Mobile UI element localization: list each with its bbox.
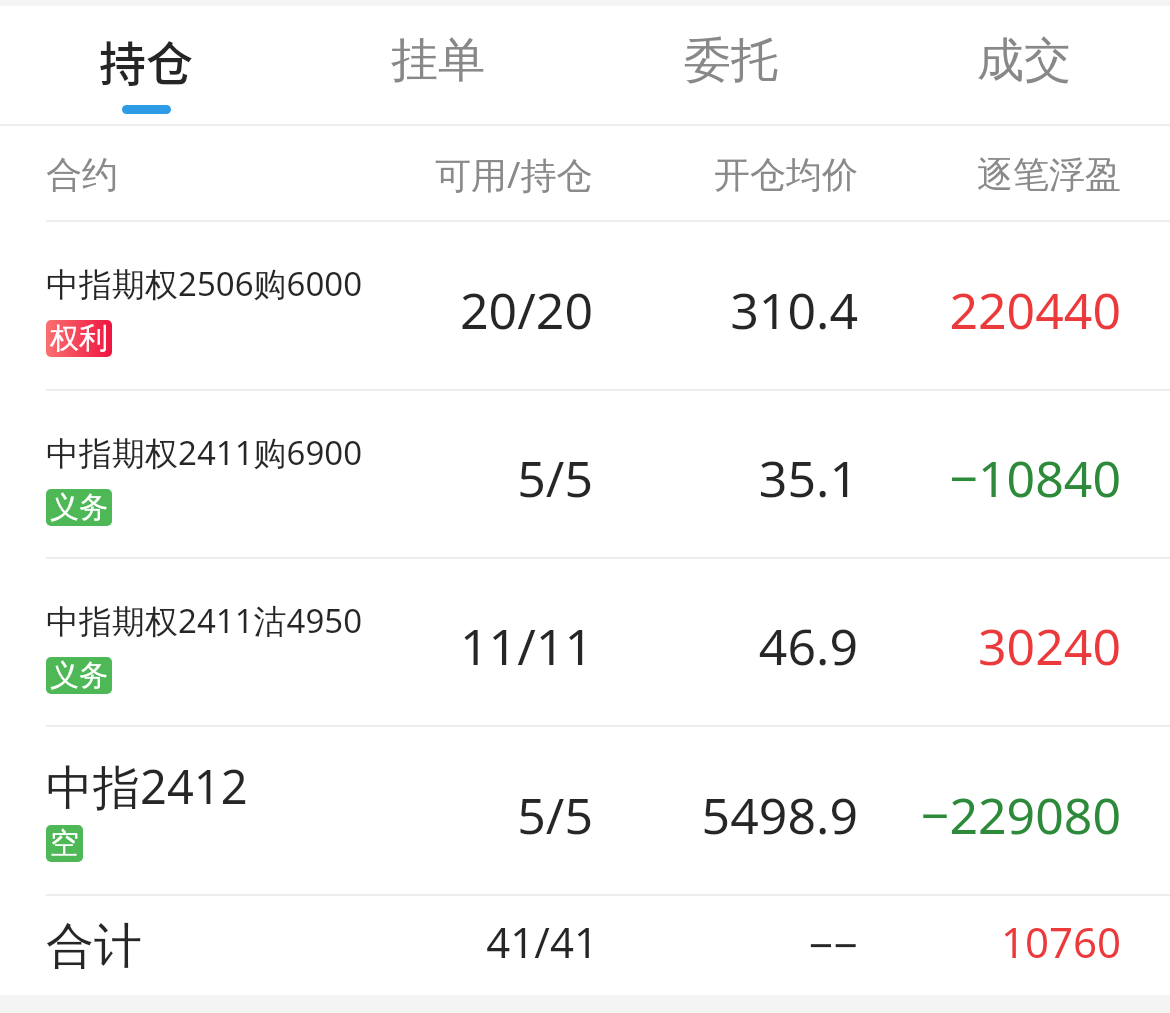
staticText: 41/41 <box>486 913 598 970</box>
staticText: 持仓 <box>99 26 193 94</box>
button[interactable]: 中指2412 <box>0 727 1170 896</box>
staticText: 30240 <box>978 612 1121 680</box>
staticText: −− <box>808 915 858 974</box>
staticText: 权利 <box>50 320 108 357</box>
staticText: 220440 <box>949 276 1121 344</box>
button[interactable]: 中指期权2506购6000 <box>0 222 1170 391</box>
staticText: 20/20 <box>460 276 593 344</box>
staticText: 5/5 <box>517 781 593 849</box>
staticText: −10840 <box>949 444 1121 512</box>
staticText: 可用/持仓 <box>435 150 593 199</box>
staticText: 合计 <box>46 916 142 976</box>
staticText: 46.9 <box>758 612 858 680</box>
staticText: 开仓均价 <box>714 152 858 197</box>
staticText: 5/5 <box>517 444 593 512</box>
staticText: 委托 <box>684 31 778 90</box>
button[interactable]: 挂单 <box>292 6 584 126</box>
staticText: 逐笔浮盈 <box>977 152 1121 197</box>
button[interactable]: 中指期权2411购6900 <box>0 391 1170 559</box>
staticText: 挂单 <box>391 31 485 90</box>
staticText: 10760 <box>1000 913 1121 970</box>
button[interactable]: 成交 <box>877 6 1170 126</box>
button[interactable]: 中指期权2411沽4950 <box>0 559 1170 727</box>
button[interactable]: 持仓 <box>0 6 292 126</box>
staticText: 合约 <box>46 152 118 197</box>
staticText: 310.4 <box>730 276 858 344</box>
staticText: 中指2412 <box>46 754 248 818</box>
staticText: −229080 <box>920 781 1121 849</box>
staticText: 35.1 <box>758 444 858 512</box>
staticText: 空 <box>50 825 79 862</box>
staticText: 中指期权2506购6000 <box>46 261 363 306</box>
staticText: 中指期权2411购6900 <box>46 430 363 475</box>
staticText: 5498.9 <box>701 781 858 849</box>
staticText: 义务 <box>50 657 108 694</box>
staticText: 11/11 <box>460 612 593 680</box>
staticText: 义务 <box>50 489 108 526</box>
button[interactable]: 合计 <box>0 896 1170 995</box>
staticText: 成交 <box>977 31 1071 90</box>
button[interactable]: 委托 <box>584 6 877 126</box>
staticText: 中指期权2411沽4950 <box>46 598 363 643</box>
